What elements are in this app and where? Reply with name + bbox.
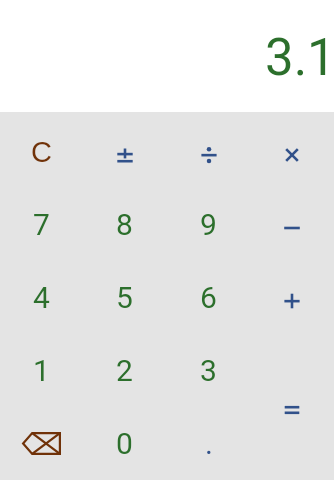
button[interactable]: 6 bbox=[167, 261, 250, 334]
button[interactable]: 4 bbox=[0, 261, 83, 334]
staticText: 0 bbox=[116, 426, 133, 461]
button[interactable]: 0 bbox=[83, 407, 166, 480]
button[interactable]: Plus bbox=[250, 261, 333, 334]
button[interactable]: Divide bbox=[167, 115, 250, 188]
button[interactable]: 1 bbox=[0, 334, 83, 407]
button[interactable]: 5 bbox=[83, 261, 166, 334]
staticText: 5 bbox=[116, 280, 133, 315]
staticText: 1 bbox=[33, 353, 50, 388]
staticText: 4 bbox=[33, 280, 50, 315]
staticText: 6 bbox=[200, 280, 217, 315]
button[interactable]: Multiply bbox=[250, 115, 333, 188]
button[interactable]: Plus minus bbox=[83, 115, 166, 188]
staticText: 2 bbox=[116, 353, 133, 388]
staticText: 8 bbox=[116, 207, 133, 242]
button[interactable]: Minus bbox=[250, 188, 333, 261]
button[interactable]: 2 bbox=[83, 334, 166, 407]
staticText: 7 bbox=[33, 207, 50, 242]
button[interactable]: Backspace bbox=[0, 407, 83, 480]
button[interactable]: . bbox=[167, 407, 250, 480]
staticText: C bbox=[31, 136, 52, 168]
staticText: 3 bbox=[200, 353, 217, 388]
staticText: 9 bbox=[200, 207, 217, 242]
button[interactable]: Equals bbox=[250, 334, 333, 480]
button[interactable]: C bbox=[0, 115, 83, 188]
staticText: 3.1 bbox=[265, 28, 334, 88]
button[interactable]: 9 bbox=[167, 188, 250, 261]
staticText: . bbox=[205, 426, 213, 461]
button[interactable]: 3 bbox=[167, 334, 250, 407]
button[interactable]: 8 bbox=[83, 188, 166, 261]
button[interactable]: 7 bbox=[0, 188, 83, 261]
